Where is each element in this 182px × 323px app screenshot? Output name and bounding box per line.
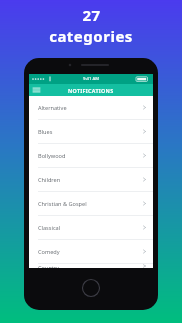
staticText: categories: [49, 26, 133, 46]
staticText: 9:41 AM: [83, 76, 100, 82]
button[interactable]: Country: [29, 264, 153, 268]
staticText: NOTIFICATIONS: [68, 87, 114, 94]
button[interactable]: Children: [29, 168, 153, 191]
staticText: Bollywood: [38, 152, 66, 160]
button[interactable]: Open navigation menu: [29, 84, 44, 96]
staticText: Christian & Gospel: [38, 200, 87, 208]
button[interactable]: Christian & Gospel: [29, 192, 153, 215]
staticText: Alternative: [38, 104, 67, 112]
button[interactable]: Blues: [29, 120, 153, 143]
staticText: Country: [38, 264, 60, 268]
button[interactable]: Comedy: [29, 240, 153, 263]
staticText: Classical: [38, 224, 61, 232]
button[interactable]: Bollywood: [29, 144, 153, 167]
button[interactable]: Alternative: [29, 96, 153, 119]
button[interactable]: Classical: [29, 216, 153, 239]
staticText: Children: [38, 176, 61, 184]
staticText: Comedy: [38, 248, 60, 256]
staticText: 27: [82, 5, 101, 25]
staticText: Blues: [38, 128, 53, 136]
